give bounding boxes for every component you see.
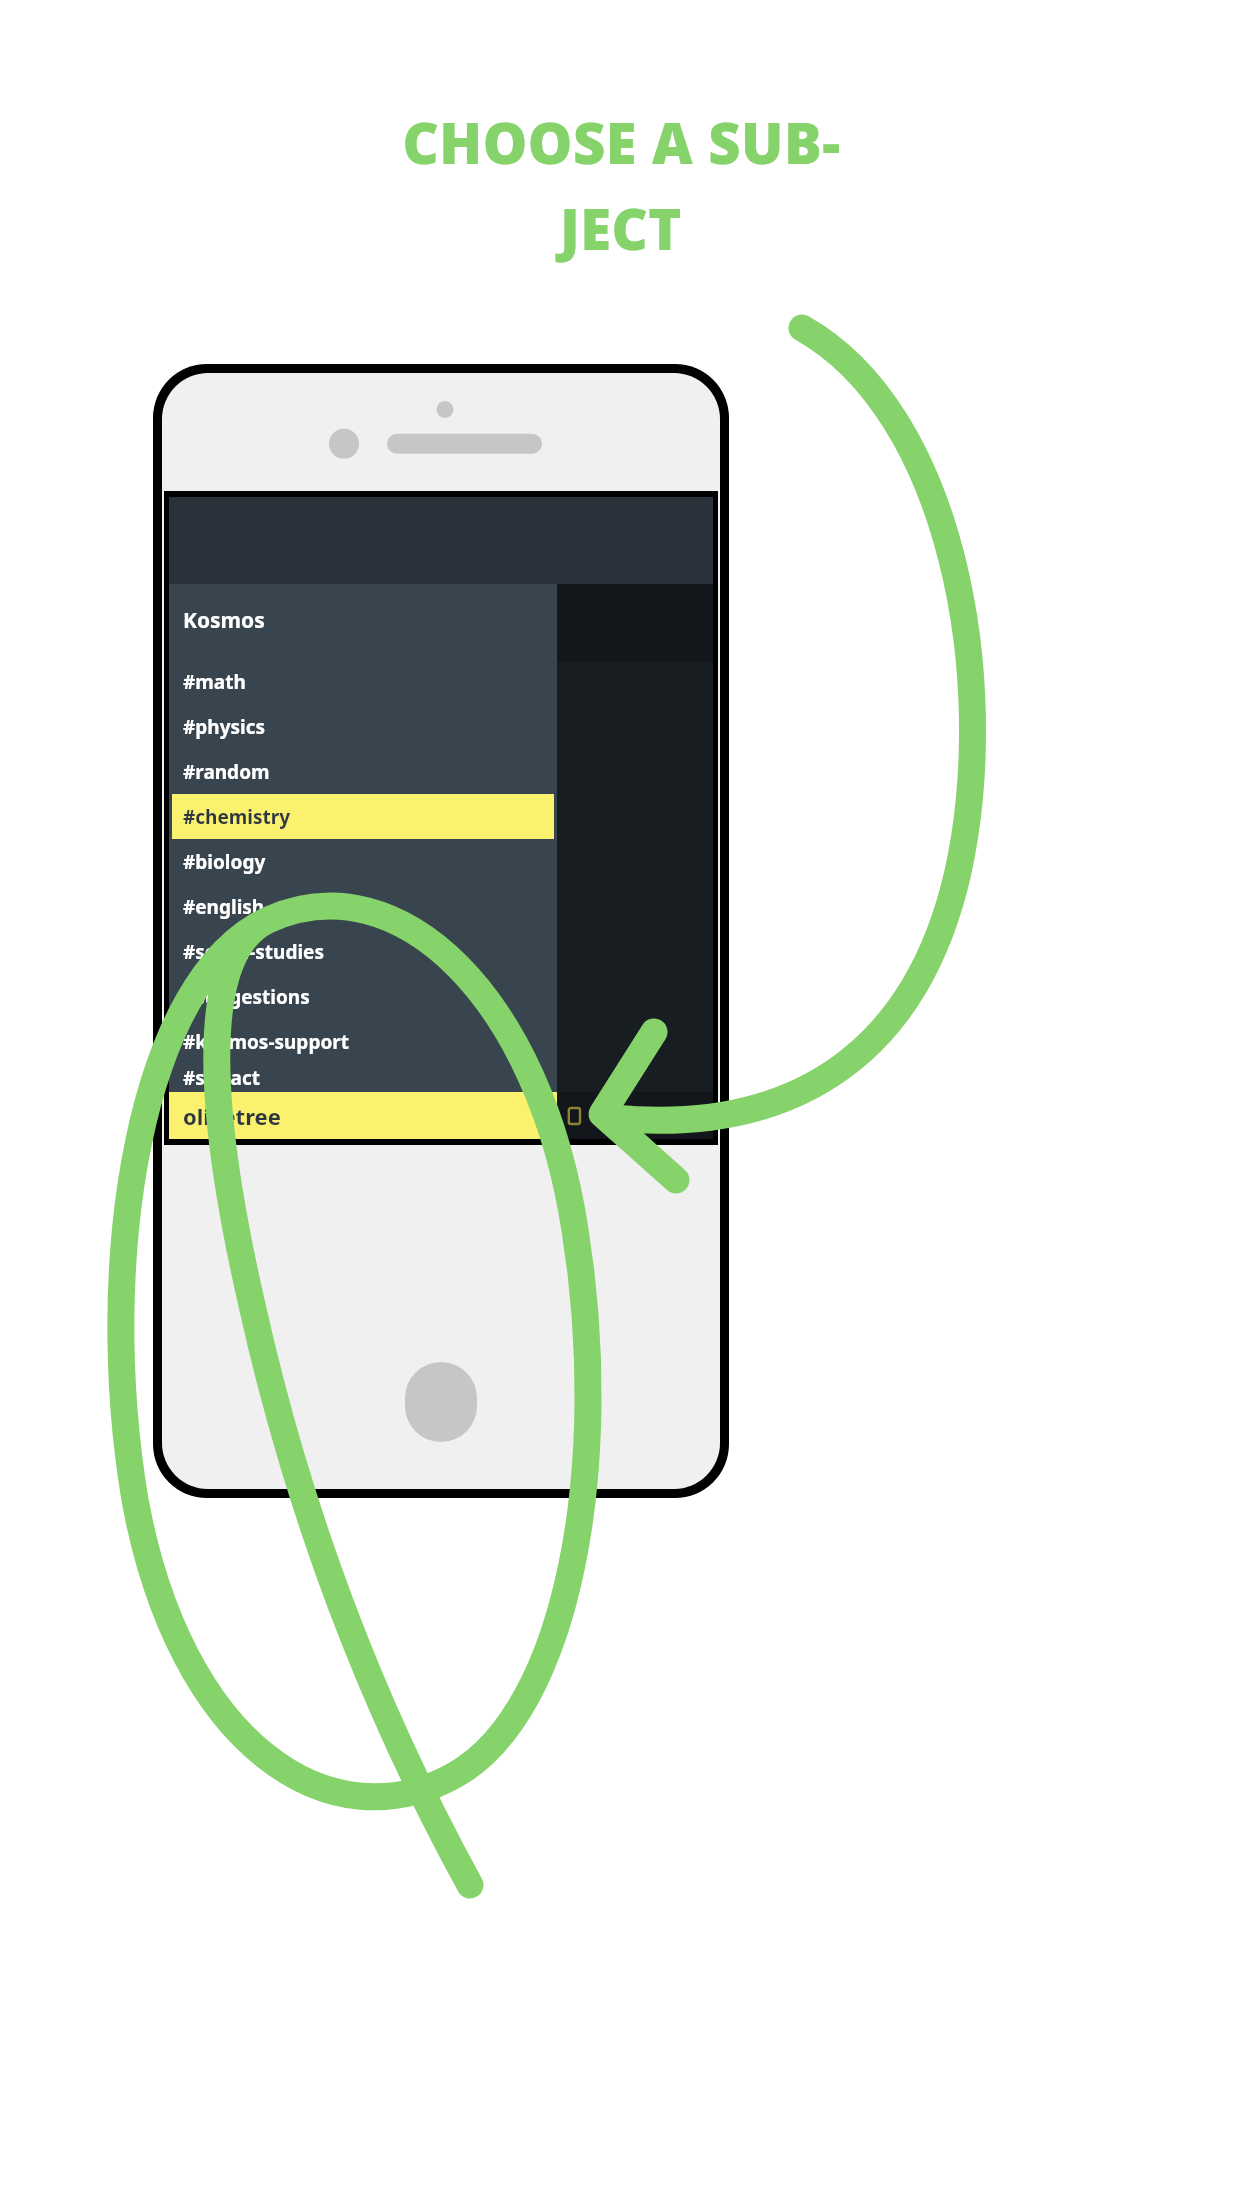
staticText: JECT bbox=[560, 190, 682, 266]
staticText: #social-studies bbox=[183, 939, 324, 965]
staticText: #english bbox=[183, 894, 265, 920]
button[interactable]: Camera bbox=[591, 1101, 621, 1131]
button[interactable]: #biology bbox=[169, 839, 557, 884]
staticText: olivetree bbox=[183, 1101, 281, 1131]
staticText: CHOOSE A SUB- bbox=[402, 104, 841, 180]
button[interactable]: Attach bbox=[559, 1103, 585, 1129]
button[interactable]: #math bbox=[169, 659, 557, 704]
staticText: #math bbox=[183, 669, 246, 695]
button[interactable]: #sat-act bbox=[169, 1064, 557, 1092]
button[interactable]: #suggestions bbox=[169, 974, 557, 1019]
button[interactable]: Home bbox=[405, 1362, 477, 1442]
button[interactable]: Send bbox=[627, 1101, 657, 1131]
staticText: #physics bbox=[183, 714, 266, 740]
staticText: #suggestions bbox=[183, 984, 310, 1010]
button[interactable]: #english bbox=[169, 884, 557, 929]
staticText: #random bbox=[183, 759, 270, 785]
button[interactable]: #kosmos-support bbox=[169, 1019, 557, 1064]
button[interactable]: olivetree bbox=[169, 1092, 557, 1139]
staticText: #chemistry bbox=[183, 804, 291, 830]
staticText: #biology bbox=[183, 849, 266, 875]
staticText: #kosmos-support bbox=[183, 1029, 350, 1055]
staticText: #sat-act bbox=[183, 1065, 260, 1091]
staticText: Kosmos bbox=[183, 606, 265, 635]
button[interactable]: #physics bbox=[169, 704, 557, 749]
button[interactable]: Kosmos bbox=[169, 606, 557, 635]
button[interactable]: #social-studies bbox=[169, 929, 557, 974]
button[interactable]: #chemistry bbox=[172, 794, 554, 839]
button[interactable]: #random bbox=[169, 749, 557, 794]
